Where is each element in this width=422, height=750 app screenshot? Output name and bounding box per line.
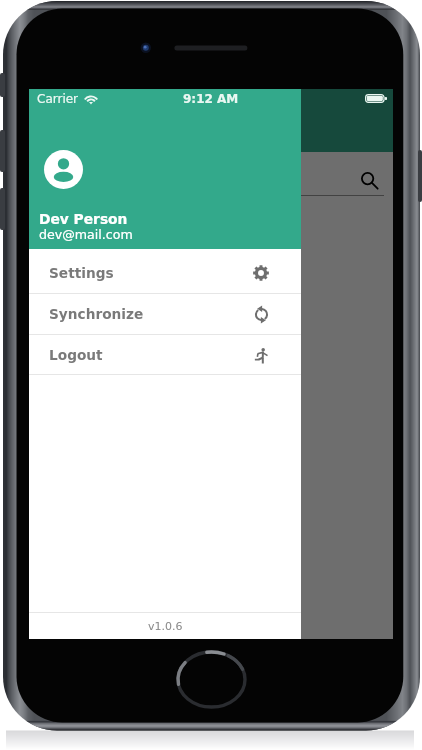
- button[interactable]: Synchronize: [29, 294, 301, 334]
- button[interactable]: Search: [354, 165, 384, 195]
- staticText: Settings: [49, 265, 114, 281]
- staticText: dev@mail.com: [39, 227, 133, 242]
- staticText: Dev Person: [39, 211, 128, 227]
- staticText: Synchronize: [49, 306, 144, 322]
- staticText: Logout: [49, 347, 103, 363]
- staticText: 9:12 AM: [183, 92, 239, 106]
- button[interactable]: Settings: [29, 253, 301, 293]
- button[interactable]: Logout: [29, 335, 301, 374]
- staticText: v1.0.6: [148, 620, 183, 633]
- staticText: Carrier: [37, 92, 79, 106]
